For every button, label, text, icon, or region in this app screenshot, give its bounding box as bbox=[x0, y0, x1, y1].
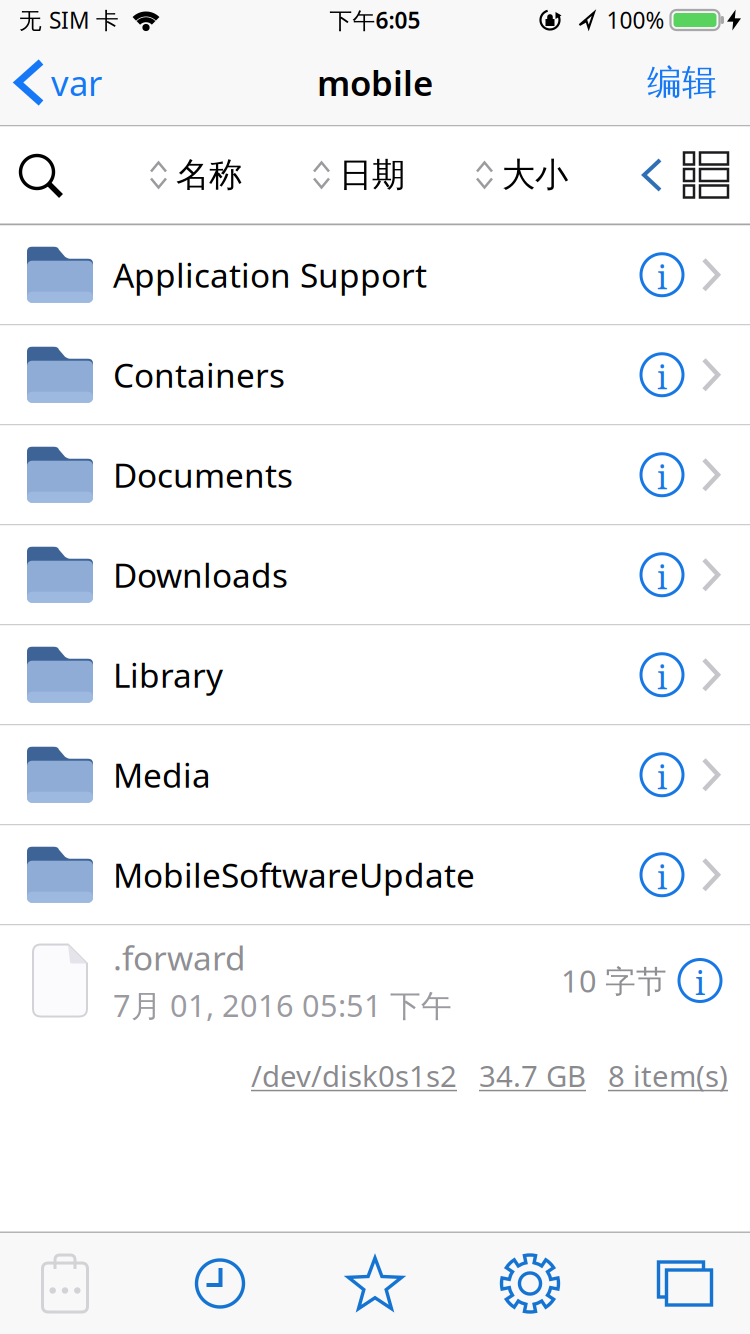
staticText: 34.7 GB bbox=[479, 1056, 586, 1095]
staticText: i bbox=[657, 255, 667, 299]
button[interactable]: Downloads bbox=[0, 525, 750, 625]
button[interactable]: Search bbox=[0, 153, 62, 197]
button[interactable]: Back bbox=[0, 59, 102, 105]
staticText: 编辑 bbox=[647, 61, 717, 104]
button[interactable]: 34.7 GB bbox=[479, 1056, 586, 1095]
staticText: Application Support bbox=[113, 253, 427, 297]
staticText: Containers bbox=[113, 353, 285, 397]
staticText: 8 item(s) bbox=[608, 1056, 728, 1095]
button[interactable]: Info bbox=[639, 852, 685, 898]
button[interactable]: View options bbox=[660, 152, 750, 197]
button[interactable]: Recent bbox=[150, 1233, 300, 1333]
staticText: /dev/disk0s1s2 bbox=[251, 1056, 457, 1095]
staticText: 无 SIM 卡 bbox=[19, 5, 119, 35]
button[interactable]: /dev/disk0s1s2 bbox=[251, 1056, 457, 1095]
button[interactable]: Info bbox=[639, 552, 685, 598]
button[interactable]: Settings bbox=[450, 1233, 600, 1333]
button[interactable]: Favorites bbox=[300, 1233, 450, 1333]
staticText: 7月 01, 2016 05:51 下午 bbox=[113, 985, 452, 1025]
button[interactable]: Library bbox=[0, 625, 750, 725]
button[interactable]: MobileSoftwareUpdate bbox=[0, 825, 750, 925]
button[interactable]: 名称 bbox=[151, 154, 242, 195]
button[interactable]: Application Support bbox=[0, 225, 750, 325]
staticText: 10 字节 bbox=[561, 960, 667, 1001]
staticText: 下午6:05 bbox=[329, 5, 420, 35]
staticText: var bbox=[51, 59, 102, 105]
staticText: 100% bbox=[606, 5, 664, 35]
staticText: mobile bbox=[317, 59, 433, 105]
staticText: i bbox=[657, 855, 667, 899]
button[interactable]: Info bbox=[639, 752, 685, 798]
button[interactable]: Containers bbox=[0, 325, 750, 425]
button[interactable]: Media bbox=[0, 725, 750, 825]
button[interactable]: Info bbox=[639, 252, 685, 298]
staticText: i bbox=[695, 961, 705, 1004]
staticText: .forward bbox=[113, 935, 246, 980]
button[interactable]: Documents bbox=[0, 425, 750, 525]
staticText: 日期 bbox=[339, 154, 405, 195]
button[interactable]: 大小 bbox=[477, 154, 568, 195]
button[interactable]: 编辑 bbox=[647, 61, 750, 104]
button[interactable]: Collapse bbox=[644, 160, 660, 190]
staticText: 名称 bbox=[176, 154, 242, 195]
button[interactable]: .forward bbox=[0, 925, 750, 1035]
staticText: i bbox=[657, 555, 667, 599]
button[interactable]: Info bbox=[639, 352, 685, 398]
button[interactable]: Info bbox=[639, 652, 685, 698]
button[interactable]: 日期 bbox=[314, 154, 405, 195]
staticText: i bbox=[657, 655, 667, 699]
button[interactable]: Clipboard bbox=[0, 1233, 150, 1333]
staticText: 大小 bbox=[502, 154, 568, 195]
staticText: i bbox=[657, 455, 667, 499]
staticText: i bbox=[657, 355, 667, 399]
button[interactable]: Tabs bbox=[600, 1233, 750, 1333]
staticText: Downloads bbox=[113, 553, 288, 597]
staticText: Media bbox=[113, 753, 211, 797]
button[interactable]: Info bbox=[677, 957, 723, 1003]
staticText: Documents bbox=[113, 453, 293, 497]
button[interactable]: Info bbox=[639, 452, 685, 498]
staticText: Library bbox=[113, 653, 223, 697]
staticText: i bbox=[657, 755, 667, 799]
staticText: MobileSoftwareUpdate bbox=[113, 853, 475, 897]
button[interactable]: 8 item(s) bbox=[608, 1056, 728, 1095]
